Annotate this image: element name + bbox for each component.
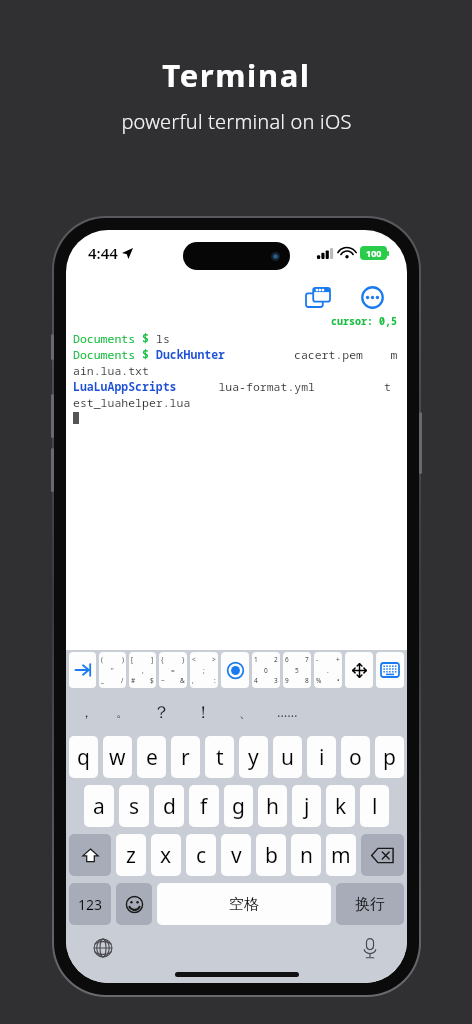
staticText: u xyxy=(281,743,294,772)
staticText: g xyxy=(232,792,245,821)
button[interactable]: c xyxy=(186,834,216,876)
staticText: 换行 xyxy=(355,895,385,914)
staticText: ls xyxy=(156,331,170,347)
staticText: t xyxy=(216,743,224,772)
button[interactable]: Change keyboard xyxy=(88,933,118,963)
button[interactable]: g xyxy=(224,785,253,827)
staticText: e xyxy=(146,743,158,772)
staticText: $ xyxy=(150,676,154,685)
button[interactable]: q xyxy=(69,736,98,778)
staticText: 2 xyxy=(274,655,278,664)
button[interactable]: Backspace xyxy=(361,834,404,876)
button[interactable]: v xyxy=(221,834,251,876)
button[interactable]: Shift xyxy=(69,834,111,876)
button[interactable]: z xyxy=(116,834,146,876)
button[interactable]: h xyxy=(258,785,287,827)
staticText: 空格 xyxy=(229,895,259,914)
staticText: - xyxy=(316,655,319,664)
staticText: / xyxy=(121,676,124,685)
staticText: ？ xyxy=(153,702,170,723)
staticText: > xyxy=(212,655,216,664)
button[interactable]: p xyxy=(375,736,404,778)
button[interactable]: o xyxy=(341,736,370,778)
staticText: _ xyxy=(101,676,104,685)
button[interactable]: n xyxy=(291,834,321,876)
button[interactable]: m xyxy=(326,834,356,876)
button[interactable]: s xyxy=(119,785,149,827)
staticText: 5 xyxy=(295,666,299,675)
button[interactable]: f xyxy=(189,785,219,827)
button[interactable]: b xyxy=(256,834,286,876)
staticText: y xyxy=(248,743,259,772)
button[interactable]: More options xyxy=(355,280,389,314)
staticText: ！ xyxy=(195,702,212,723)
button[interactable]: 空格 xyxy=(157,883,331,925)
button[interactable]: k xyxy=(326,785,355,827)
button[interactable]: Tabs xyxy=(301,280,335,314)
staticText: 9 xyxy=(285,676,289,685)
staticText: h xyxy=(266,792,279,821)
button[interactable]: [ xyxy=(129,652,156,688)
staticText: { xyxy=(161,655,164,664)
staticText: a xyxy=(93,792,105,821)
button[interactable]: Dictation xyxy=(355,933,385,963)
staticText: cursor: 0,5 xyxy=(331,314,397,328)
staticText: f xyxy=(200,792,208,821)
staticText: j xyxy=(304,792,310,821)
button[interactable]: d xyxy=(154,785,184,827)
staticText: DuckHunter xyxy=(156,347,225,363)
staticText: 6 xyxy=(285,655,289,664)
staticText: " xyxy=(111,666,114,675)
button[interactable]: t xyxy=(205,736,234,778)
staticText: 4 xyxy=(254,676,258,685)
staticText: 100 xyxy=(366,247,382,259)
staticText: ( xyxy=(101,655,103,664)
button[interactable]: 1 xyxy=(252,652,280,688)
button[interactable]: ！ xyxy=(182,690,224,734)
staticText: l xyxy=(372,792,378,821)
button[interactable]: w xyxy=(103,736,132,778)
button[interactable]: x xyxy=(151,834,181,876)
button[interactable]: …… xyxy=(266,690,308,734)
button[interactable] xyxy=(345,652,373,688)
button[interactable]: u xyxy=(273,736,302,778)
staticText: [ xyxy=(131,655,134,664)
button[interactable]: Emoji xyxy=(116,883,152,925)
button[interactable]: j xyxy=(292,785,321,827)
button[interactable]: r xyxy=(171,736,200,778)
staticText: $ xyxy=(142,331,156,347)
button[interactable]: ( xyxy=(99,652,126,688)
staticText: 7 xyxy=(305,655,309,664)
button[interactable] xyxy=(376,652,404,688)
button[interactable]: ， xyxy=(68,690,104,734)
button[interactable]: 123 xyxy=(69,883,111,925)
button[interactable]: 。 xyxy=(104,690,140,734)
button[interactable]: y xyxy=(239,736,268,778)
staticText: . xyxy=(327,666,329,675)
staticText: # xyxy=(131,676,136,685)
button[interactable]: { xyxy=(159,652,187,688)
staticText: 8 xyxy=(305,676,309,685)
staticText: k xyxy=(335,792,347,821)
button[interactable]: ？ xyxy=(140,690,182,734)
button[interactable] xyxy=(221,652,249,688)
staticText: < xyxy=(192,655,196,664)
staticText: powerful terminal on iOS xyxy=(121,108,352,135)
staticText: Terminal xyxy=(162,54,311,96)
staticText: r xyxy=(181,743,190,772)
staticText: 1 xyxy=(254,655,258,664)
button[interactable]: e xyxy=(137,736,166,778)
button[interactable]: < xyxy=(190,652,218,688)
button[interactable]: 6 xyxy=(283,652,311,688)
button[interactable] xyxy=(69,652,96,688)
button[interactable]: i xyxy=(307,736,336,778)
staticText: cacert.pem m xyxy=(225,347,398,363)
staticText: Documents xyxy=(73,331,142,347)
staticText: lua-format.yml t xyxy=(177,379,391,395)
button[interactable]: l xyxy=(360,785,389,827)
button[interactable]: - xyxy=(314,652,342,688)
button[interactable]: a xyxy=(84,785,114,827)
button[interactable]: 换行 xyxy=(336,883,404,925)
button[interactable]: 、 xyxy=(224,690,266,734)
staticText: v xyxy=(231,841,242,870)
